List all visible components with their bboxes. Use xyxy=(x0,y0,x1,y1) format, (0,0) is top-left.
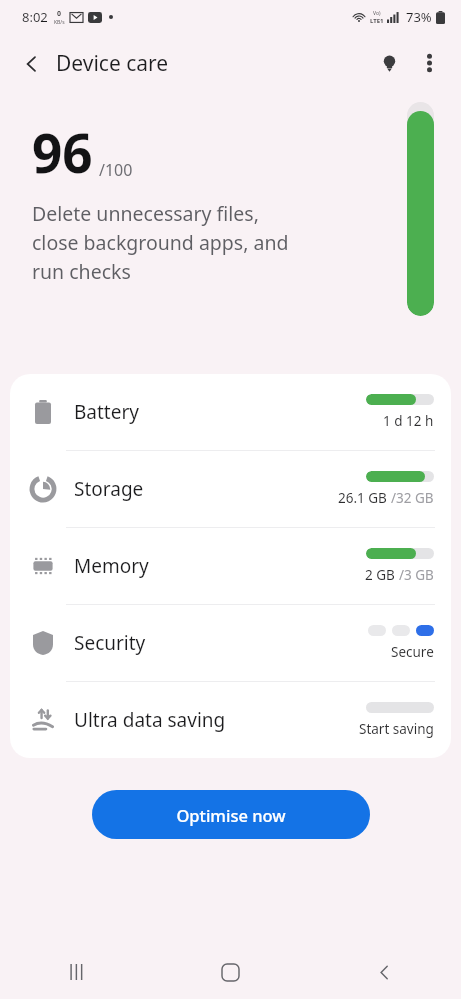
button[interactable]: More options xyxy=(409,43,449,83)
staticText: Delete unnecessary files, close backgrou… xyxy=(32,200,289,284)
button[interactable]: Storage xyxy=(10,451,451,527)
staticText: 73% xyxy=(406,8,432,26)
staticText: 26.1 GB xyxy=(338,489,391,507)
button[interactable]: Recent apps xyxy=(0,945,153,999)
staticText: Vo) xyxy=(373,10,381,17)
staticText: 96 xyxy=(32,116,93,188)
staticText: Start saving xyxy=(359,720,434,738)
staticText: 0 xyxy=(57,9,62,19)
button[interactable]: Battery xyxy=(10,374,451,450)
button[interactable]: Optimise now xyxy=(92,790,370,839)
staticText: Optimise now xyxy=(176,804,286,826)
staticText: 2 GB xyxy=(365,566,399,584)
button[interactable]: Home xyxy=(153,945,307,999)
staticText: /100 xyxy=(99,159,133,181)
staticText: Secure xyxy=(391,643,434,661)
staticText: 8:02 xyxy=(22,8,48,26)
staticText: Storage xyxy=(74,476,144,502)
staticText: /3 GB xyxy=(399,566,434,584)
button[interactable]: Security xyxy=(10,605,451,681)
button[interactable]: Tips xyxy=(369,43,409,83)
button[interactable]: Back xyxy=(307,945,461,999)
button[interactable]: Memory xyxy=(10,528,451,604)
staticText: 1 d 12 h xyxy=(383,412,434,430)
staticText: Ultra data saving xyxy=(74,707,226,733)
other: Back xyxy=(22,54,42,74)
staticText: LTE1 xyxy=(370,17,384,25)
staticText: Memory xyxy=(74,553,149,579)
button[interactable]: Ultra data saving xyxy=(10,682,451,758)
staticText: Security xyxy=(74,630,146,656)
staticText: Battery xyxy=(74,399,139,425)
staticText: /32 GB xyxy=(391,489,434,507)
button[interactable]: Back xyxy=(14,41,177,86)
staticText: KB/s xyxy=(54,19,65,26)
staticText: Device care xyxy=(56,49,169,78)
